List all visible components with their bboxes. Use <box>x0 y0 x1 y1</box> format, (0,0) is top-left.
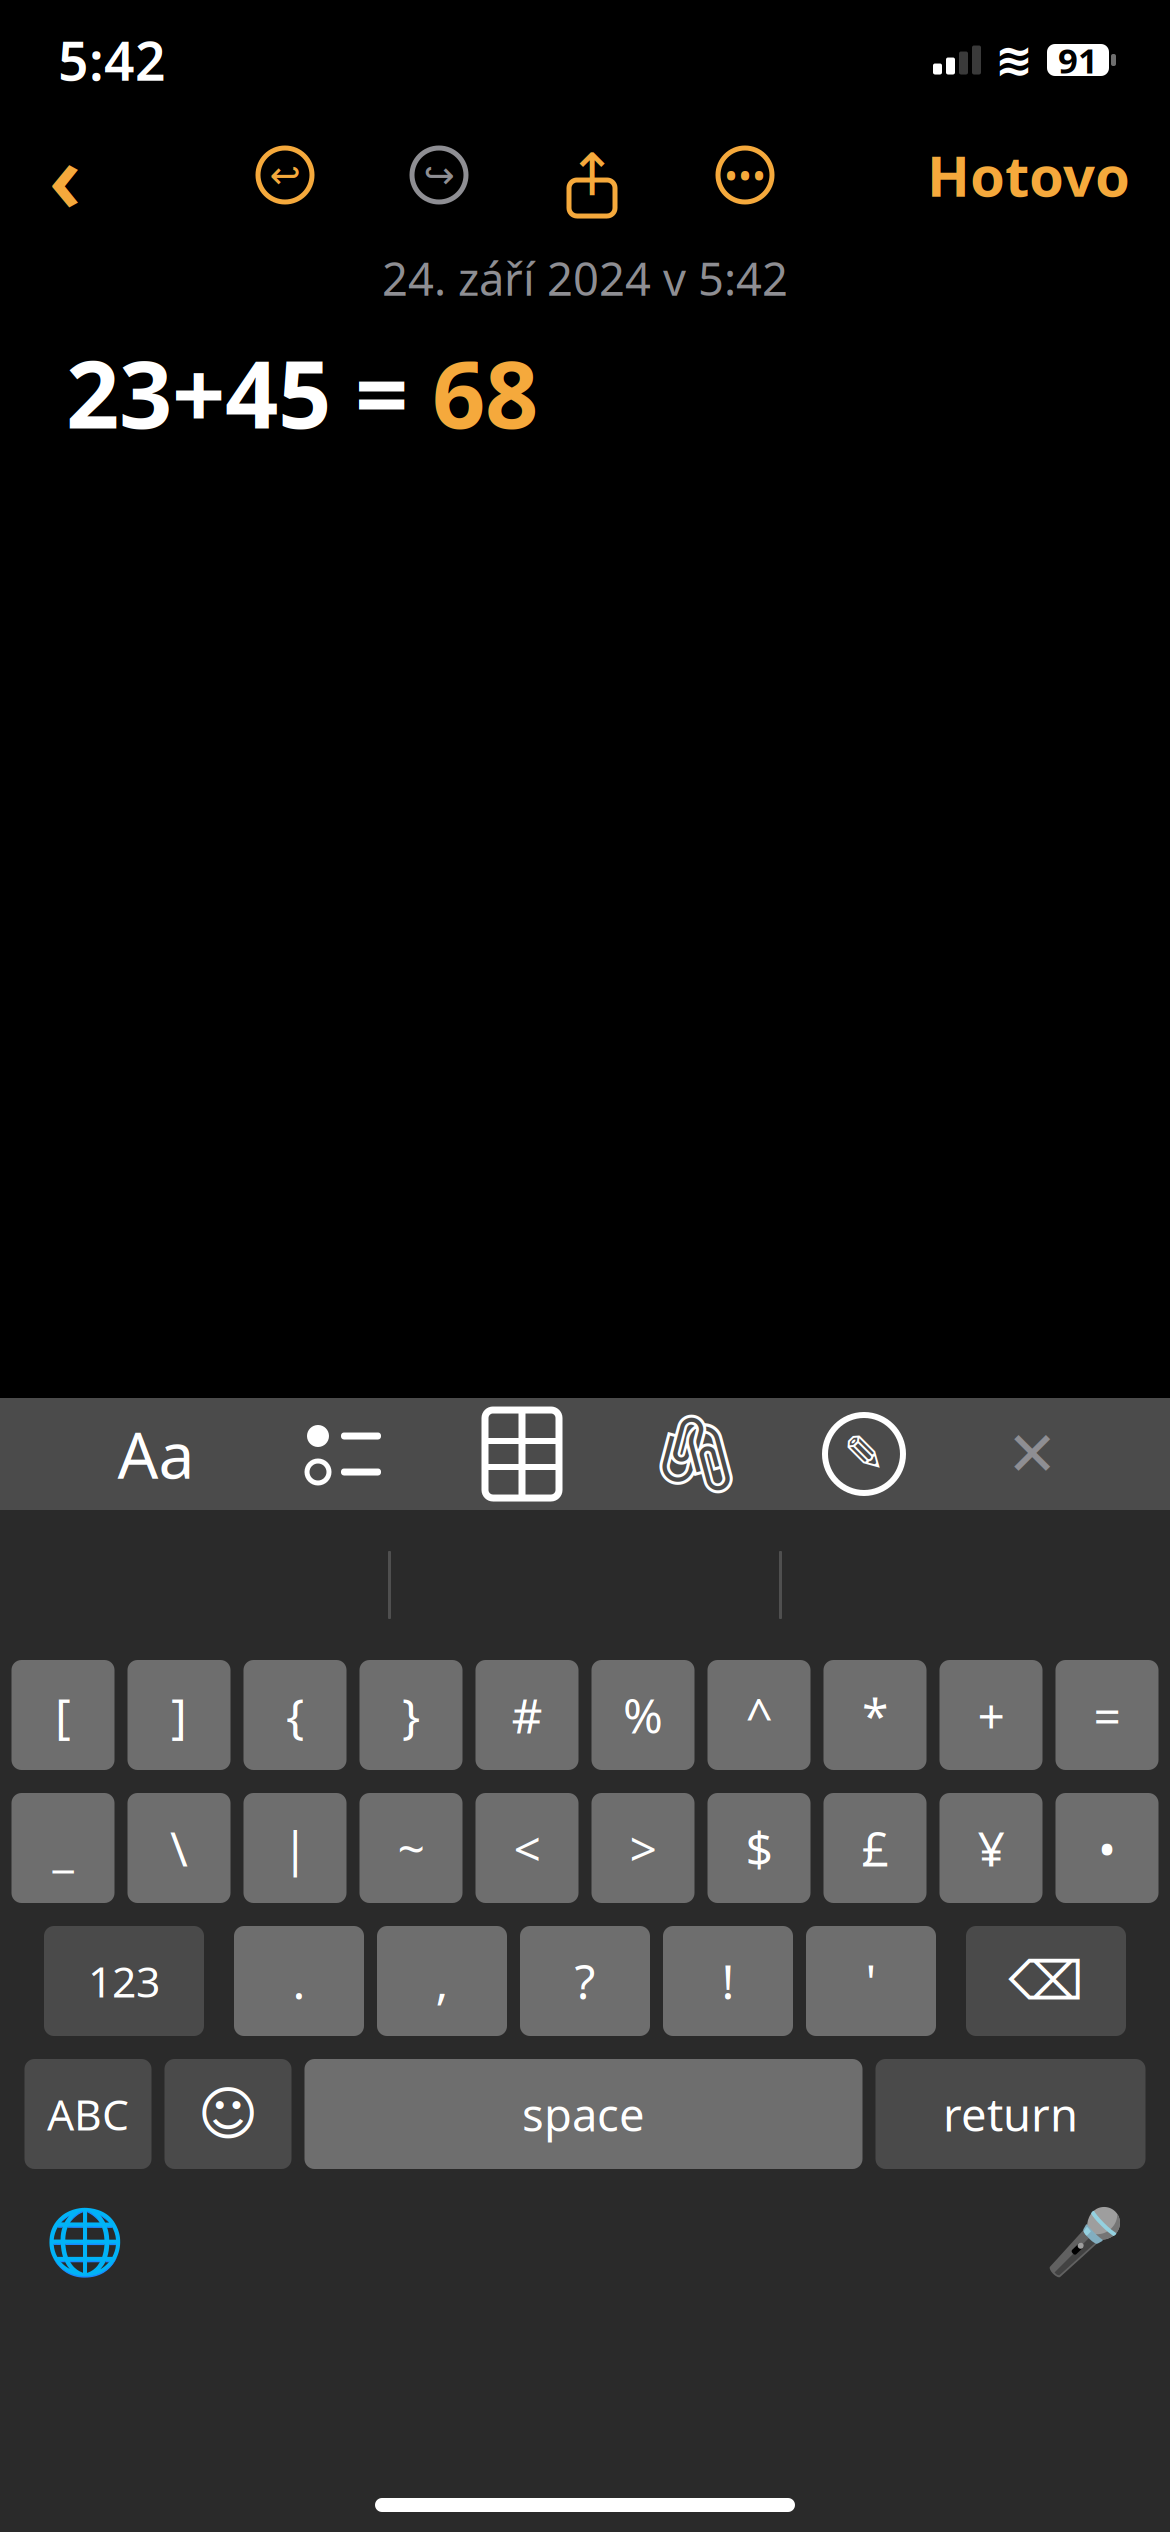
button[interactable]: ^ <box>707 1660 810 1770</box>
button[interactable]: Table <box>474 1406 570 1502</box>
button[interactable]: £ <box>823 1793 926 1903</box>
button[interactable]: ? <box>520 1926 650 2036</box>
staticText: return <box>943 2084 1078 2144</box>
button[interactable]: Switch keyboard <box>40 2197 130 2287</box>
staticText: \ <box>170 1816 188 1880</box>
button[interactable]: ] <box>127 1660 230 1770</box>
staticText: ^ <box>745 1683 772 1747</box>
button[interactable]: 123 <box>44 1926 204 2036</box>
staticText: 68 <box>432 330 538 454</box>
staticText: * <box>862 1683 888 1747</box>
staticText: 🌐 <box>45 2205 125 2278</box>
staticText: 5:42 <box>58 25 166 95</box>
staticText: _ <box>52 1816 73 1880</box>
staticText: ‹ <box>48 111 81 239</box>
button[interactable]: \ <box>127 1793 230 1903</box>
staticText: ] <box>171 1683 187 1747</box>
button[interactable]: ! <box>663 1926 793 2036</box>
staticText: ~ <box>397 1816 424 1880</box>
staticText: 123 <box>88 1953 160 2009</box>
button[interactable]: # <box>475 1660 578 1770</box>
button[interactable]: | <box>243 1793 346 1903</box>
staticText: ¥ <box>977 1816 1004 1880</box>
button[interactable]: > <box>591 1793 694 1903</box>
staticText: ☺ <box>197 2081 258 2147</box>
staticText: ✕ <box>1006 1419 1057 1489</box>
button[interactable]: _ <box>11 1793 114 1903</box>
staticText: > <box>629 1816 656 1880</box>
staticText: 🎤 <box>1045 2205 1125 2278</box>
button[interactable]: , <box>377 1926 507 2036</box>
staticText: ↩ <box>269 154 300 196</box>
button[interactable]: ' <box>806 1926 936 2036</box>
staticText: } <box>402 1683 420 1747</box>
staticText: { <box>286 1683 304 1747</box>
staticText: £ <box>861 1816 888 1880</box>
staticText: ⌫ <box>1008 1951 1083 2011</box>
staticText: ABC <box>47 2086 129 2142</box>
button[interactable]: Dictate <box>1040 2197 1130 2287</box>
button[interactable]: + <box>939 1660 1042 1770</box>
button[interactable]: Hotovo <box>927 138 1130 212</box>
button[interactable]: ABC <box>24 2059 151 2169</box>
staticText: < <box>513 1816 540 1880</box>
button[interactable]: More <box>712 142 778 208</box>
button[interactable]: < <box>475 1793 578 1903</box>
staticText: ! <box>721 1949 734 2013</box>
staticText: | <box>282 1816 308 1880</box>
staticText: ≋ <box>995 34 1033 86</box>
staticText: space <box>522 2084 645 2144</box>
staticText: • <box>1098 1816 1116 1880</box>
staticText: ↑ <box>567 142 616 208</box>
staticText: 24. září 2024 v 5:42 <box>382 248 788 308</box>
staticText: = <box>1093 1683 1120 1747</box>
button[interactable]: [ <box>11 1660 114 1770</box>
button[interactable]: ¥ <box>939 1793 1042 1903</box>
button[interactable]: Checklist <box>296 1406 392 1502</box>
button[interactable]: Undo <box>252 142 318 208</box>
button[interactable]: return <box>875 2059 1145 2169</box>
button[interactable]: Markup <box>816 1406 912 1502</box>
button[interactable]: Back <box>30 135 100 215</box>
staticText: = <box>355 330 432 454</box>
button[interactable]: space <box>304 2059 862 2169</box>
button[interactable]: { <box>243 1660 346 1770</box>
staticText: ↪ <box>423 154 454 196</box>
button[interactable]: Emoji <box>164 2059 291 2169</box>
staticText: ? <box>574 1949 595 2013</box>
button[interactable]: ~ <box>359 1793 462 1903</box>
button[interactable]: * <box>823 1660 926 1770</box>
staticText: , <box>435 1949 448 2013</box>
button[interactable]: = <box>1055 1660 1158 1770</box>
button[interactable]: • <box>1055 1793 1158 1903</box>
button[interactable]: Share <box>564 142 620 208</box>
staticText: 🖇 <box>647 1410 745 1498</box>
staticText: . <box>292 1949 305 2013</box>
staticText: ' <box>865 1949 876 2013</box>
staticText: + <box>977 1683 1004 1747</box>
staticText: Hotovo <box>927 138 1130 212</box>
button[interactable]: . <box>234 1926 364 2036</box>
button[interactable]: Attach <box>648 1406 744 1502</box>
button[interactable]: Redo <box>406 142 472 208</box>
staticText: 23+45 <box>66 330 355 454</box>
staticText: Aa <box>117 1411 194 1496</box>
button[interactable]: $ <box>707 1793 810 1903</box>
button[interactable]: % <box>591 1660 694 1770</box>
button[interactable]: Format <box>108 1406 204 1502</box>
staticText: $ <box>745 1816 772 1880</box>
staticText: # <box>511 1683 542 1747</box>
button[interactable]: } <box>359 1660 462 1770</box>
button[interactable]: Delete <box>966 1926 1126 2036</box>
staticText: ✎ <box>843 1425 885 1483</box>
staticText: 91 <box>1058 37 1098 83</box>
staticText: ••• <box>724 150 766 200</box>
staticText: [ <box>55 1683 71 1747</box>
button[interactable]: Close <box>984 1406 1080 1502</box>
staticText: % <box>623 1683 663 1747</box>
